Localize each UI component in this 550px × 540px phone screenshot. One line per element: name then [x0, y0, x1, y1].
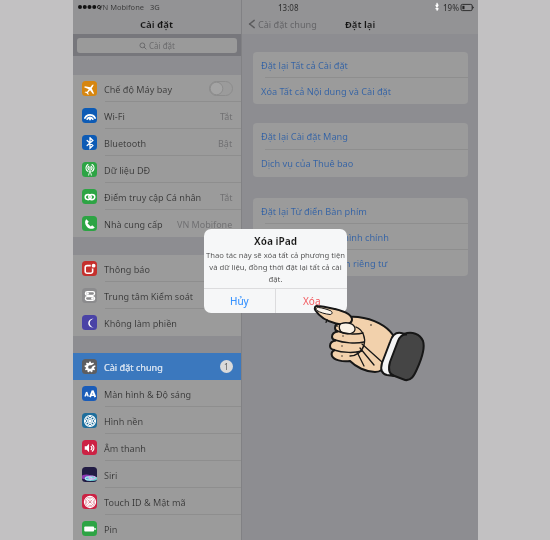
button[interactable]: Chế độ Máy bay — [73, 75, 241, 102]
button[interactable]: Đặt lại Từ điển Bàn phím — [253, 198, 468, 224]
staticText: Đặt lại Cài đặt Mạng — [261, 130, 348, 143]
staticText: Xóa — [303, 294, 321, 308]
button[interactable]: Điểm truy cập Cá nhân — [73, 183, 241, 210]
staticText: Trung tâm Kiểm soát — [104, 290, 194, 302]
staticText: 13:08 — [278, 2, 299, 13]
button[interactable]: Xóa — [276, 289, 347, 313]
staticText: Thông báo — [104, 263, 150, 275]
staticText: Chế độ Máy bay — [104, 83, 173, 95]
button[interactable]: Cài đặt chung — [73, 353, 241, 380]
staticText: Pin — [104, 523, 118, 535]
staticText: Màn hình & Độ sáng — [104, 388, 192, 400]
staticText: Thao tác này sẽ xóa tất cả phương tiện v… — [205, 250, 346, 284]
staticText: Dữ liệu DĐ — [104, 164, 151, 176]
button[interactable]: Đặt lại Cài đặt Mạng — [253, 123, 468, 150]
staticText: Bluetooth — [104, 137, 147, 149]
button[interactable]: Không làm phiền — [73, 309, 241, 336]
button[interactable]: Dịch vụ của Thuê bao — [253, 150, 468, 177]
staticText: Đặt lại — [345, 18, 376, 31]
button[interactable]: Hủy — [204, 289, 275, 313]
button[interactable]: Cài đặt chung — [246, 18, 318, 30]
staticText: Tắt — [220, 110, 233, 122]
staticText: Siri — [104, 469, 118, 481]
staticText: Âm thanh — [104, 442, 146, 454]
staticText: Cài đặt chung — [104, 361, 163, 373]
button[interactable]: Trung tâm Kiểm soát — [73, 282, 241, 309]
staticText: Đặt lại Tất cả Cài đặt — [261, 59, 348, 72]
staticText: Touch ID & Mật mã — [104, 496, 186, 508]
button[interactable]: Đặt lại Bố cục Màn hình chính — [253, 224, 468, 250]
staticText: Điểm truy cập Cá nhân — [104, 191, 202, 203]
button[interactable]: Bluetooth — [73, 129, 241, 156]
button[interactable]: Airplane mode toggle — [209, 81, 233, 96]
staticText: Cài đặt — [149, 40, 175, 51]
button[interactable]: Đặt lại Vị trí & Quyền riêng tư — [253, 250, 468, 276]
staticText: Dịch vụ của Thuê bao — [261, 157, 354, 170]
button[interactable]: Màn hình & Độ sáng — [73, 380, 241, 407]
button[interactable]: Siri — [73, 461, 241, 488]
button[interactable]: Wi-Fi — [73, 102, 241, 129]
staticText: VN Mobifone — [98, 2, 145, 12]
button[interactable]: Xóa Tất cả Nội dung và Cài đặt — [253, 78, 468, 104]
staticText: Đặt lại Vị trí & Quyền riêng tư — [261, 257, 388, 270]
staticText: VN Mobifone — [177, 218, 233, 230]
staticText: Cài đặt chung — [258, 18, 317, 30]
staticText: Tắt — [220, 191, 233, 203]
button[interactable]: Âm thanh — [73, 434, 241, 461]
button[interactable]: Thông báo — [73, 255, 241, 282]
button[interactable]: Cài đặt — [77, 38, 237, 53]
staticText: Hình nền — [104, 415, 144, 427]
button[interactable]: Dữ liệu DĐ — [73, 156, 241, 183]
staticText: Xóa Tất cả Nội dung và Cài đặt — [261, 85, 392, 98]
staticText: Không làm phiền — [104, 317, 177, 329]
button[interactable]: Nhà cung cấp — [73, 210, 241, 237]
staticText: Xóa iPad — [254, 234, 298, 248]
staticText: Đặt lại Từ điển Bàn phím — [261, 205, 367, 218]
staticText: Bật — [218, 137, 233, 149]
button[interactable]: Touch ID & Mật mã — [73, 488, 241, 515]
staticText: Hủy — [230, 294, 249, 308]
staticText: 1 — [224, 361, 229, 372]
button[interactable]: Đặt lại Tất cả Cài đặt — [253, 52, 468, 78]
button[interactable]: Pin — [73, 515, 241, 540]
staticText: Đặt lại Bố cục Màn hình chính — [261, 231, 389, 244]
staticText: Cài đặt — [140, 18, 174, 31]
staticText: Nhà cung cấp — [104, 218, 163, 230]
button[interactable]: Hình nền — [73, 407, 241, 434]
staticText: 19% — [443, 2, 459, 13]
staticText: 3G — [150, 2, 160, 12]
staticText: Wi-Fi — [104, 110, 125, 122]
